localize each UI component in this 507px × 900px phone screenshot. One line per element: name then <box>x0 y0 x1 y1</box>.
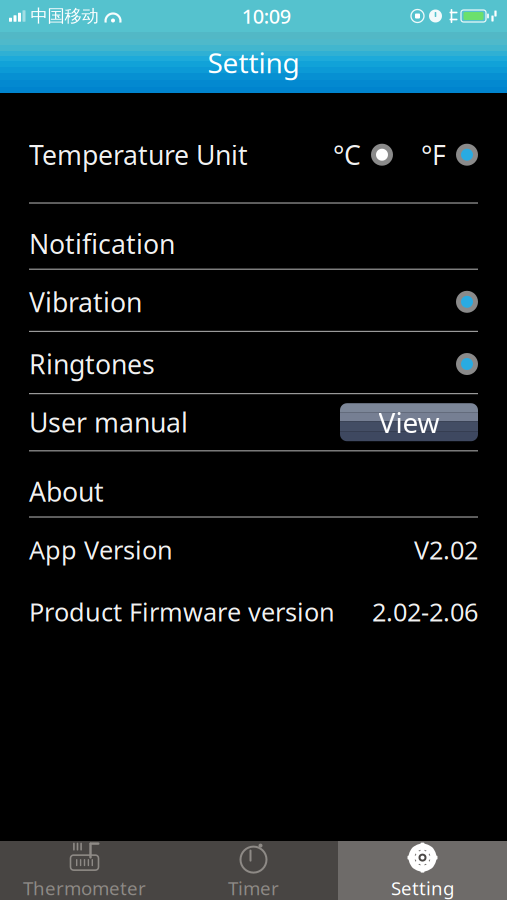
staticText: Timer <box>228 876 279 900</box>
button[interactable]: °C <box>333 129 393 180</box>
staticText: Setting <box>391 876 454 900</box>
staticText: Vibration <box>29 284 142 319</box>
staticText: 中国移动 <box>30 5 98 27</box>
staticText: 10:09 <box>242 3 291 29</box>
staticText: Notification <box>29 226 175 261</box>
staticText: Thermometer <box>23 876 146 900</box>
staticText: 2.02-2.06 <box>372 595 478 628</box>
staticText: °F <box>421 137 446 172</box>
staticText: About <box>29 474 104 509</box>
staticText: Setting <box>207 44 299 81</box>
staticText: Product Firmware version <box>29 595 335 628</box>
button[interactable]: Setting <box>338 841 507 900</box>
staticText: App Version <box>29 533 173 566</box>
button[interactable]: °F <box>393 129 478 180</box>
staticText: Ringtones <box>29 346 155 382</box>
staticText: V2.02 <box>414 533 478 566</box>
button[interactable]: Timer <box>169 841 338 900</box>
button[interactable]: View <box>340 403 478 441</box>
button[interactable]: Thermometer <box>0 841 169 900</box>
button[interactable]: Ringtones <box>29 344 478 384</box>
button[interactable]: Vibration <box>29 282 478 322</box>
staticText: °C <box>333 137 361 172</box>
staticText: User manual <box>29 404 188 440</box>
staticText: View <box>378 404 439 441</box>
staticText: Temperature Unit <box>29 137 248 172</box>
